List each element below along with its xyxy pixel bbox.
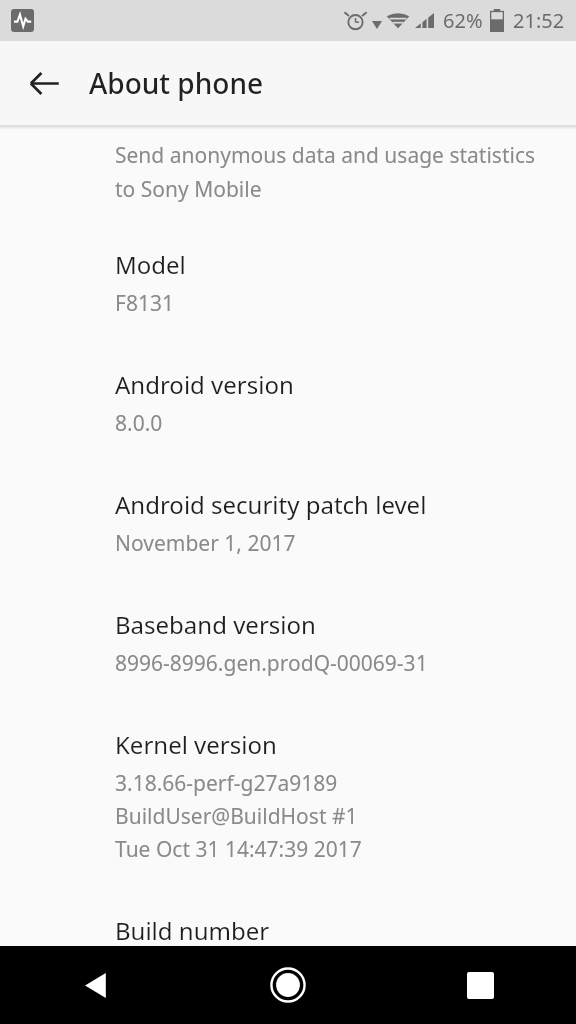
staticText: About phone [89,64,264,102]
staticText: Baseband version [115,608,316,641]
button[interactable]: Kernel version [115,728,560,864]
staticText: 3.18.66-perf-g27a9189 [115,769,338,798]
staticText: Android security patch level [115,488,427,521]
staticText: Model [115,248,186,281]
staticText: Android version [115,368,294,401]
staticText: 21:52 [513,7,565,34]
button[interactable]: Build number [115,914,560,946]
button[interactable]: Recent apps [384,946,576,1024]
staticText: F8131 [115,289,174,318]
button[interactable]: Send anonymous data and usage statistics [115,141,560,204]
staticText: Send anonymous data and usage statistics [115,141,536,170]
button[interactable]: Model [115,248,560,318]
button[interactable]: Baseband version [115,608,560,678]
staticText: to Sony Mobile [115,175,262,204]
staticText: Tue Oct 31 14:47:39 2017 [115,835,362,864]
button[interactable]: Android version [115,368,560,438]
staticText: 62% [443,7,483,34]
staticText: 8996-8996.gen.prodQ-00069-31 [115,649,428,678]
staticText: November 1, 2017 [115,529,296,558]
button[interactable]: Navigate up [16,55,72,111]
button[interactable]: Android security patch level [115,488,560,558]
staticText: 8.0.0 [115,409,163,438]
staticText: BuildUser@BuildHost #1 [115,802,358,831]
button[interactable]: Back [0,946,192,1024]
staticText: Build number [115,914,270,946]
button[interactable]: Home [192,946,384,1024]
staticText: Kernel version [115,728,277,761]
